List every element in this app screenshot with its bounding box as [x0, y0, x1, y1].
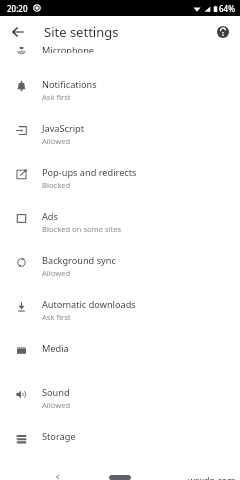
staticText: Ads: [42, 210, 58, 223]
staticText: Pop-ups and redirects: [42, 166, 137, 179]
staticText: Site settings: [44, 23, 119, 41]
button[interactable]: Automatic downloads: [0, 287, 240, 331]
staticText: Sound: [42, 386, 70, 399]
staticText: Background sync: [42, 254, 116, 267]
button[interactable]: Help: [212, 21, 234, 43]
staticText: Blocked: [42, 180, 71, 190]
button[interactable]: Background sync: [0, 243, 240, 287]
staticText: Ask first: [42, 92, 71, 102]
button[interactable]: Ads: [0, 199, 240, 243]
button[interactable]: Back: [6, 20, 30, 44]
staticText: wsxdn.com: [188, 474, 236, 480]
button[interactable]: Storage: [0, 419, 240, 463]
staticText: 20:20: [7, 3, 28, 14]
staticText: Allowed: [42, 268, 71, 278]
button[interactable]: Sound: [0, 375, 240, 419]
staticText: Notifications: [42, 78, 97, 91]
button[interactable]: JavaScript: [0, 111, 240, 155]
staticText: Storage: [42, 430, 76, 443]
button[interactable]: Microphone: [0, 47, 240, 53]
staticText: JavaScript: [42, 122, 85, 135]
staticText: Media: [42, 342, 69, 355]
button[interactable]: Media: [0, 331, 240, 375]
staticText: Blocked on some sites: [42, 224, 122, 234]
button[interactable]: Pop-ups and redirects: [0, 155, 240, 199]
staticText: Microphone: [42, 47, 95, 53]
button[interactable]: Back: [48, 474, 68, 480]
button[interactable]: Home: [109, 475, 131, 480]
staticText: Automatic downloads: [42, 298, 136, 311]
staticText: Allowed: [42, 136, 71, 146]
staticText: Ask first: [42, 312, 71, 322]
button[interactable]: Notifications: [0, 67, 240, 111]
staticText: Allowed: [42, 400, 71, 410]
staticText: 64%: [219, 3, 235, 14]
